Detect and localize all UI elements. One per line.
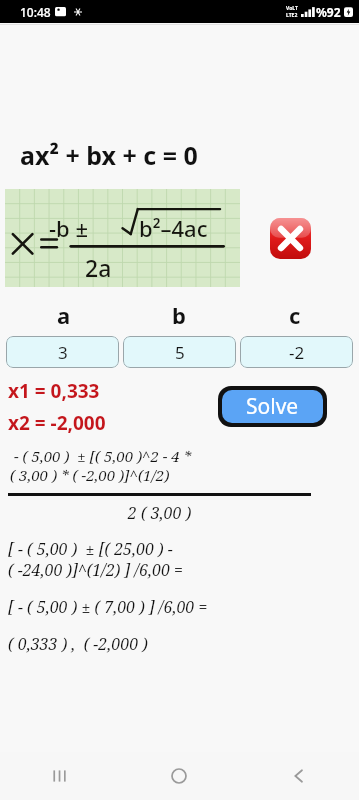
staticText: 10:48: [20, 4, 51, 20]
staticText: b: [172, 300, 186, 330]
staticText: x2 = -2,000: [8, 410, 106, 436]
staticText: -2: [289, 341, 305, 364]
staticText: [ - ( 5,00 ) ± [( 25,00 ) - ( -24,00 )]^…: [8, 538, 184, 581]
staticText: -b ±: [49, 213, 89, 243]
button[interactable]: Recent apps: [0, 752, 119, 800]
button[interactable]: Clear: [267, 215, 313, 261]
staticText: a: [57, 300, 71, 330]
staticText: VoLT: [286, 5, 298, 12]
staticText: 5: [175, 341, 185, 364]
staticText: %92: [316, 4, 341, 20]
staticText: 2a: [85, 252, 112, 283]
staticText: - ( 5,00 ) ± [( 5,00 )^2 - 4 * ( 3,00 ) …: [10, 446, 192, 485]
staticText: x1 = 0,333: [8, 378, 100, 404]
button[interactable]: Solve: [222, 390, 323, 423]
staticText: 2 ( 3,00 ): [8, 502, 311, 524]
button[interactable]: Home: [119, 752, 239, 800]
staticText: c: [289, 300, 301, 330]
button[interactable]: -2: [240, 336, 353, 368]
staticText: b²–4ac: [139, 213, 208, 243]
staticText: LTE2: [286, 12, 298, 19]
staticText: ( 0,333 ) , ( -2,000 ): [8, 633, 148, 655]
button[interactable]: 3: [6, 336, 119, 368]
button[interactable]: Back: [239, 752, 359, 800]
staticText: [ - ( 5,00 ) ± ( 7,00 ) ] /6,00 =: [8, 596, 208, 618]
button[interactable]: 5: [123, 336, 236, 368]
staticText: ax² + bx + c = 0: [20, 138, 198, 172]
staticText: 3: [58, 341, 68, 364]
staticText: Solve: [246, 392, 299, 421]
